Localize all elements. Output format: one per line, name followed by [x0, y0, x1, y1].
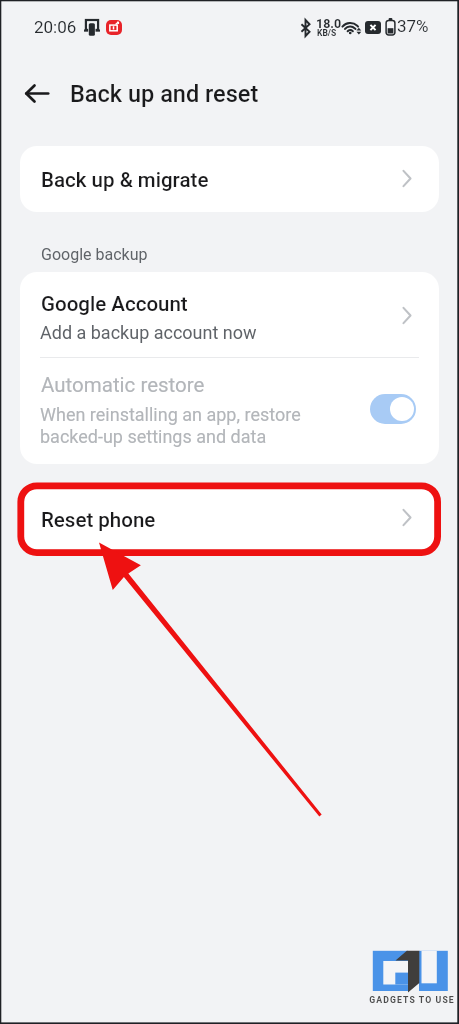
other: Open	[402, 307, 412, 324]
staticText: 20:06	[34, 17, 77, 37]
button[interactable]: Back up & migrate	[20, 146, 439, 212]
button[interactable]: Automatic restore toggle, on	[370, 394, 416, 424]
staticText: GADGETS TO USE	[369, 995, 455, 1005]
staticText: Google backup	[41, 245, 148, 264]
other: Open	[402, 170, 412, 187]
other: Open	[402, 509, 412, 526]
button[interactable]: Reset phone	[24, 489, 435, 549]
staticText: Automatic restore	[41, 373, 205, 397]
other: Gadgets To Use watermark	[370, 948, 450, 994]
button[interactable]: Google Account	[20, 272, 439, 357]
button[interactable]: Automatic restore	[20, 358, 439, 464]
staticText: 18.0	[316, 16, 342, 31]
staticText: 37%	[397, 16, 429, 36]
staticText: Back up and reset	[70, 80, 259, 108]
staticText: KB/S	[317, 28, 337, 38]
staticText: Back up & migrate	[41, 168, 209, 192]
staticText: Google Account	[41, 292, 188, 316]
button[interactable]: Back	[13, 70, 60, 117]
staticText: When reinstalling an app, restore backed…	[40, 404, 301, 447]
staticText: Add a backup account now	[40, 322, 257, 343]
staticText: Reset phone	[41, 508, 156, 532]
